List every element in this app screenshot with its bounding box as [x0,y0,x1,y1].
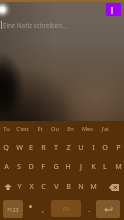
staticText: . [88,204,90,214]
button[interactable]: Y [13,176,25,195]
staticText: S [17,161,21,171]
button[interactable]: . [83,200,94,218]
staticText: En [67,125,74,133]
button[interactable]: O [99,137,111,156]
staticText: F [41,161,45,171]
button[interactable]: , [37,200,48,218]
staticText: Eine Notiz schreiben... [3,21,68,29]
button[interactable]: Shift [1,178,14,196]
staticText: R [41,142,46,152]
staticText: O [102,142,108,152]
staticText: X [29,181,34,191]
button[interactable]: E [25,137,37,156]
staticText: Tu [3,125,10,133]
button[interactable]: C [37,176,49,195]
staticText: A [4,161,9,171]
staticText: D [28,161,34,171]
button[interactable]: A [0,156,12,175]
button[interactable]: U [75,137,87,156]
staticText: T [54,142,58,152]
staticText: N [78,181,84,191]
button[interactable]: G [50,156,62,175]
button[interactable]: S [13,156,25,175]
button[interactable]: J [75,156,87,175]
button[interactable]: T [50,137,62,156]
staticText: E [29,142,33,152]
button[interactable]: F [37,156,49,175]
staticText: , [42,204,44,214]
button[interactable]: M [112,156,124,175]
button[interactable]: Z [62,137,74,156]
button[interactable]: C'est [14,122,30,135]
button[interactable]: J'ai [97,122,113,135]
button[interactable]: Space [51,200,81,217]
button[interactable]: X [25,176,37,195]
button[interactable]: I [87,137,99,156]
button[interactable]: Backspace [106,178,121,196]
staticText: I [92,142,95,152]
staticText: Et [37,125,43,133]
staticText: M [90,181,97,191]
staticText: Y [17,181,22,191]
button[interactable]: D [25,156,37,175]
staticText: B [66,181,71,191]
staticText: K [91,161,96,171]
button[interactable]: Enter [96,200,120,218]
staticText: L [103,161,107,171]
button[interactable]: N [75,176,87,195]
staticText: M [115,161,122,171]
staticText: ?123 [7,206,19,213]
button[interactable]: K [87,156,99,175]
staticText: C [41,181,46,191]
button[interactable]: En [62,122,78,135]
button[interactable]: Account [106,3,121,16]
button[interactable]: Ou [47,122,63,135]
staticText: J'ai [101,125,109,133]
button[interactable]: B [62,176,74,195]
button[interactable]: R [37,137,49,156]
staticText: Mes [82,125,93,133]
button[interactable]: Q [0,137,12,156]
button[interactable]: P [112,137,124,156]
staticText: C'est [16,125,29,133]
button[interactable]: Emoji [24,200,37,218]
staticText: H [65,161,71,171]
staticText: J [80,161,82,171]
staticText: Q [3,142,9,152]
staticText: G [53,161,59,171]
button[interactable]: H [62,156,74,175]
button[interactable]: Tu [0,122,14,135]
staticText: W [16,142,23,152]
button[interactable]: ?123 [3,200,23,218]
staticText: V [54,181,59,191]
staticText: U [78,142,84,152]
button[interactable]: V [50,176,62,195]
button[interactable]: Mes [79,122,95,135]
staticText: Ou [51,125,59,133]
staticText: P [116,142,121,152]
button[interactable]: W [13,137,25,156]
staticText: Z [66,142,71,152]
button[interactable]: L [99,156,111,175]
button[interactable]: M [87,176,99,195]
staticText: FR [63,205,70,212]
button[interactable]: Et [32,122,48,135]
